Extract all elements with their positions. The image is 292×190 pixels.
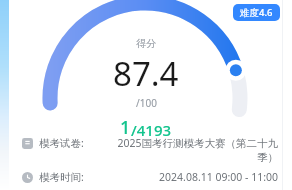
other: Exam time — [22, 172, 33, 183]
staticText: /4193 — [131, 120, 172, 140]
staticText: 2024.08.11 09:00 - 11:00 — [101, 170, 278, 184]
staticText: 难度4.6 — [240, 6, 273, 19]
button[interactable]: 难度4.6 — [233, 4, 280, 21]
staticText: /100 — [136, 96, 157, 110]
button[interactable]: Exam paper — [22, 136, 278, 164]
staticText: 1 — [120, 115, 131, 140]
staticText: 得分 — [136, 37, 156, 50]
staticText: 2025国考行测模考大赛（第二十九季） — [101, 136, 278, 164]
staticText: 模考试卷: — [39, 136, 84, 150]
other: Exam paper — [22, 138, 33, 149]
staticText: 87.4 — [113, 51, 179, 96]
staticText: 模考时间: — [39, 170, 84, 184]
button[interactable]: Exam time — [22, 170, 278, 184]
